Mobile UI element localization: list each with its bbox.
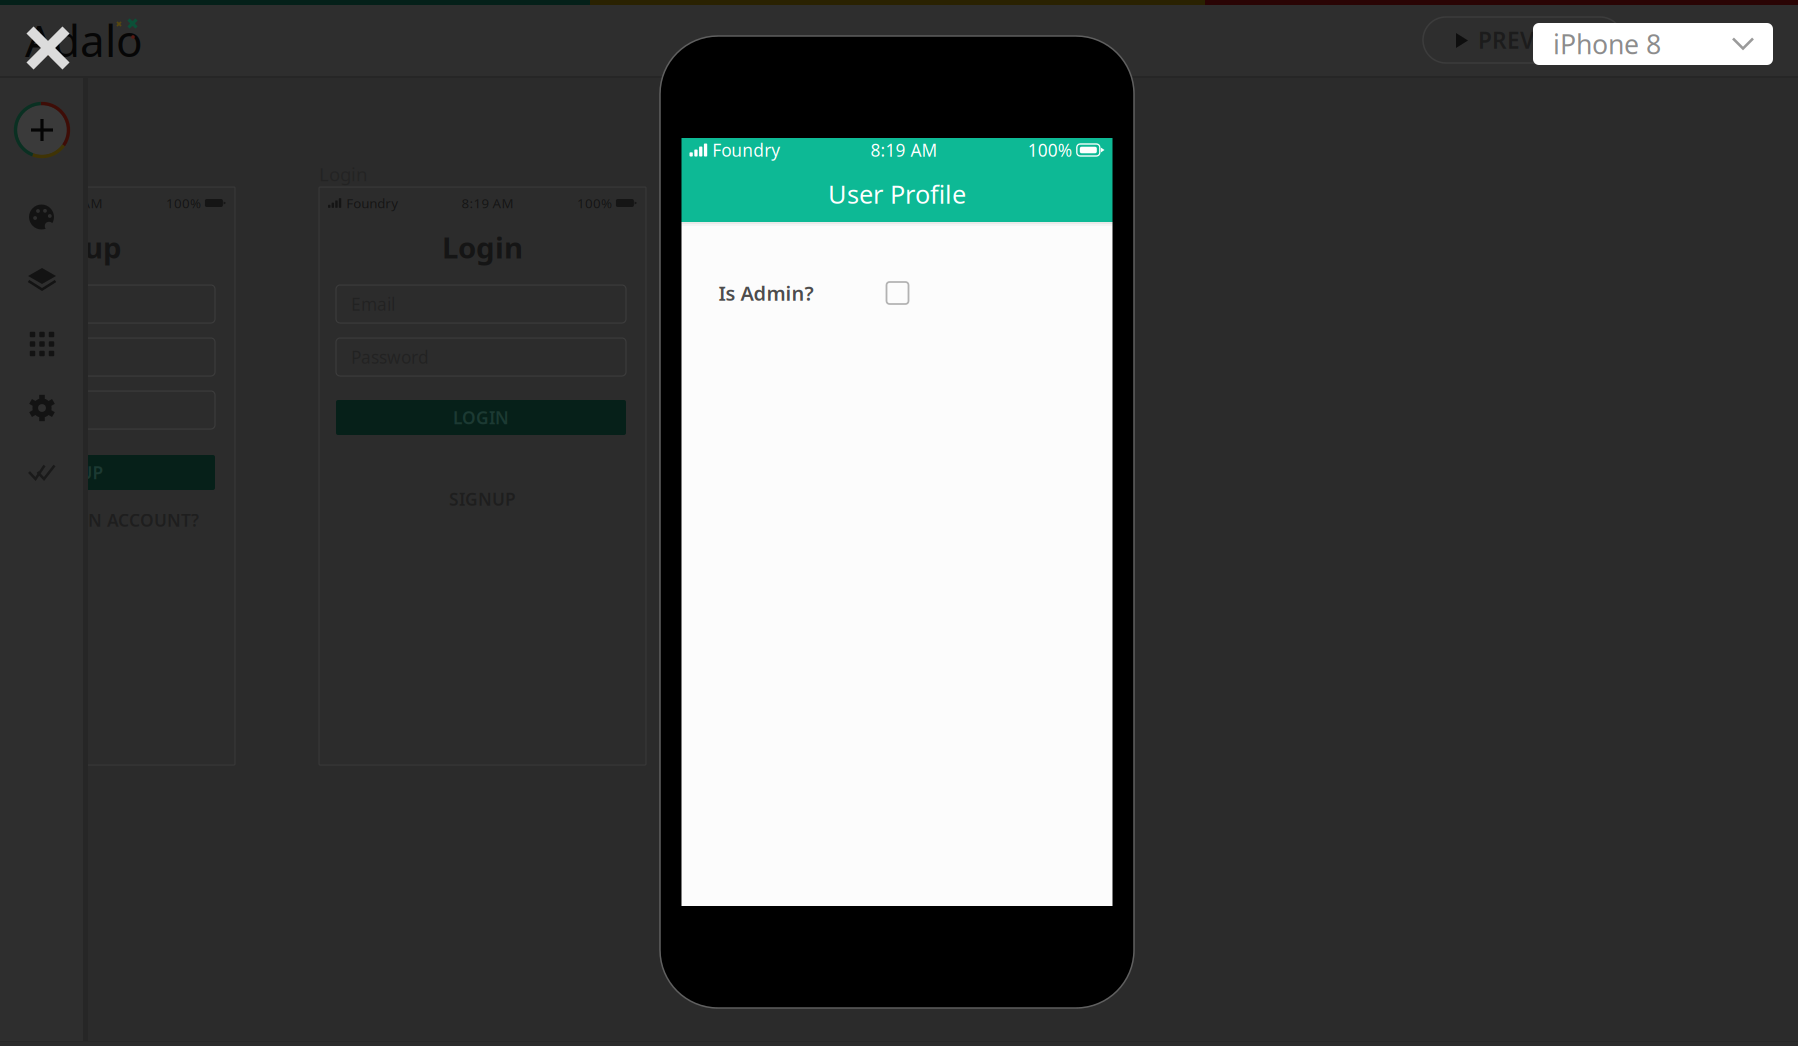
button[interactable]: Components <box>0 327 84 361</box>
button[interactable]: Publish <box>0 455 84 489</box>
staticText: Password <box>351 345 429 368</box>
button[interactable]: Add component <box>0 101 84 159</box>
button[interactable]: Screens <box>0 263 84 297</box>
button[interactable]: LOGIN <box>336 400 626 435</box>
button[interactable]: Settings <box>0 391 84 425</box>
button[interactable]: Is Admin toggle <box>880 276 914 310</box>
staticText: SIGNUP <box>449 487 516 510</box>
staticText: LOGIN <box>453 406 509 429</box>
staticText: 100% <box>166 194 201 212</box>
staticText: iPhone 8 <box>1553 26 1661 62</box>
button[interactable]: Branding <box>0 201 84 235</box>
staticText: 8:19 AM <box>51 194 103 212</box>
staticText: Login <box>442 227 523 266</box>
staticText: Adalo <box>25 11 143 69</box>
button[interactable]: ALREADY HAVE AN ACCOUNT? <box>0 509 235 531</box>
staticText: User Profile <box>828 177 966 211</box>
staticText: PREVIEW <box>1478 25 1577 55</box>
staticText: SIGNUP <box>36 461 103 484</box>
staticText: Signup <box>21 227 122 266</box>
button[interactable]: PREVIEW <box>1423 17 1623 63</box>
button[interactable]: iPhone 8 <box>1533 23 1773 65</box>
staticText: Foundry <box>712 138 780 161</box>
staticText: 8:19 AM <box>870 138 937 161</box>
button[interactable]: Close preview <box>25 25 71 71</box>
staticText: ALREADY HAVE AN ACCOUNT? <box>0 508 199 531</box>
staticText: 100% <box>1028 138 1072 161</box>
staticText: Email <box>351 292 395 315</box>
staticText: Foundry <box>346 194 398 212</box>
staticText: Is Admin? <box>718 280 813 306</box>
staticText: 8:19 AM <box>462 194 514 212</box>
button[interactable]: SIGNUP <box>0 455 215 490</box>
staticText: 100% <box>577 194 612 212</box>
